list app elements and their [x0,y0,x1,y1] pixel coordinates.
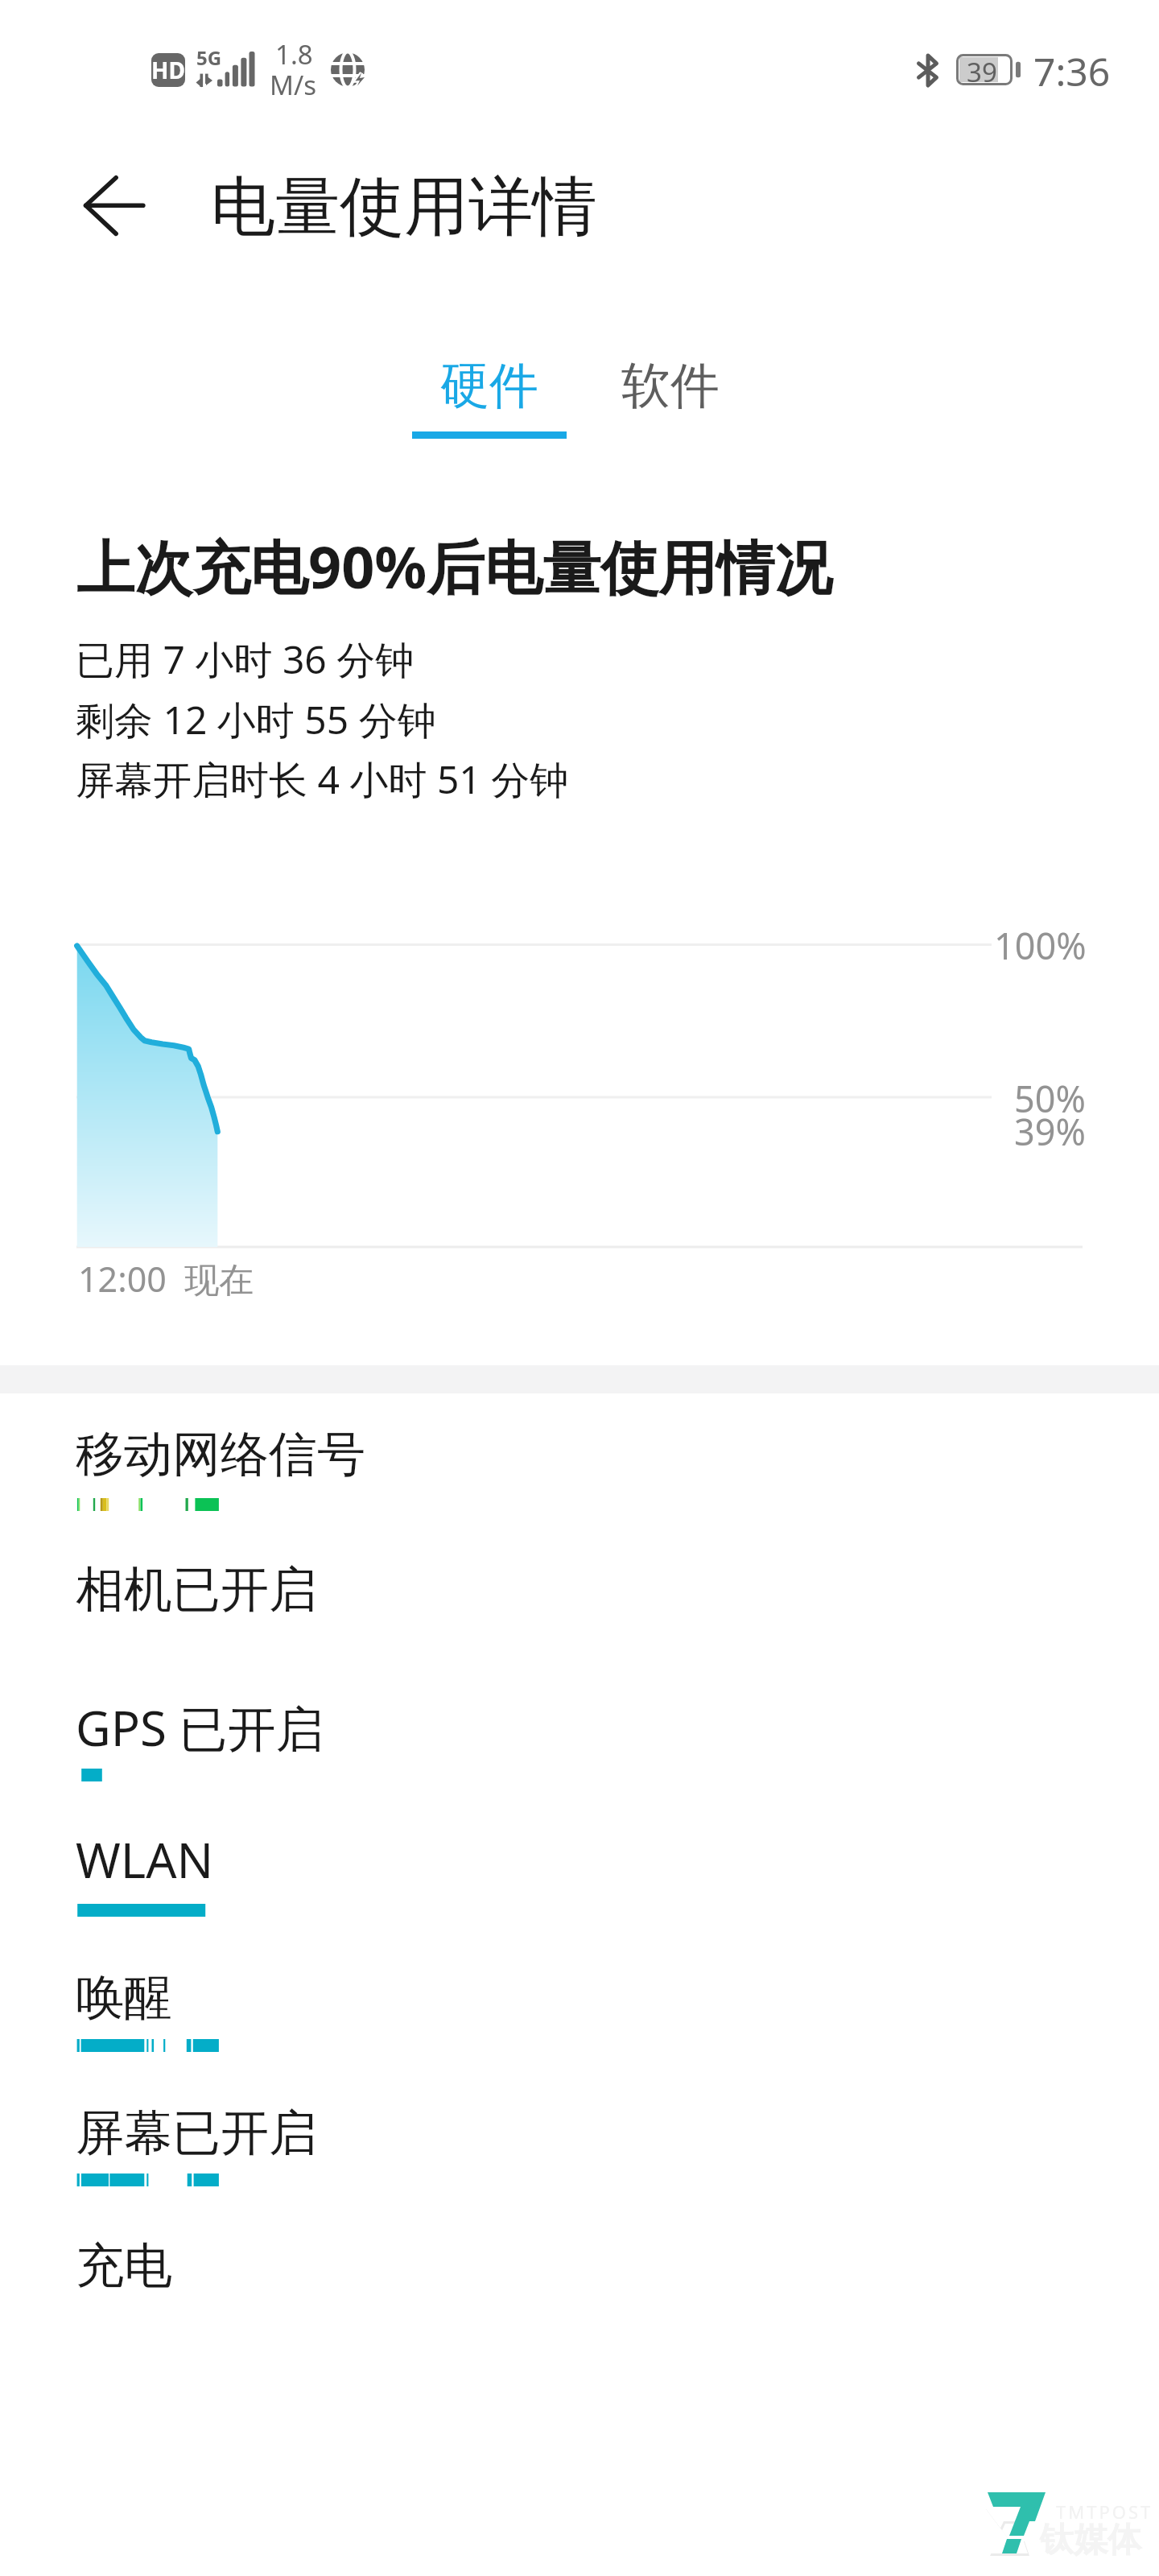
button[interactable]: 软件 [593,355,748,439]
staticText: 屏幕已开启 [76,2103,317,2164]
staticText: 相机已开启 [76,1559,317,1620]
button[interactable]: 硬件 [412,355,567,439]
staticText: M/s [270,67,317,103]
button[interactable]: 相机已开启 [0,1559,1159,1688]
staticText: TMTPOST [1056,2500,1153,2524]
staticText: 上次充电90%后电量使用情况 [76,526,833,605]
button[interactable]: WLAN [0,1827,1159,1955]
staticText: 39% [1014,1107,1086,1156]
staticText: 5G [196,44,222,71]
staticText: 剩余 12 小时 55 分钟 [76,693,436,746]
button[interactable]: 移动网络信号 [0,1424,1159,1553]
staticText: GPS 已开启 [76,1695,324,1761]
staticText: 电量使用详情 [211,167,597,248]
staticText: 屏幕开启时长 4 小时 51 分钟 [76,753,569,806]
button[interactable]: 屏幕已开启 [0,2103,1159,2231]
staticText: 充电 [76,2235,172,2297]
staticText: 1.8 [275,36,313,72]
staticText: 软件 [621,355,720,417]
staticText: 12:00 现在 [78,1255,254,1302]
staticText: 100% [994,921,1087,970]
staticText: 7:36 [1033,45,1111,97]
staticText: WLAN [76,1827,214,1893]
staticText: 已用 7 小时 36 分钟 [76,633,415,686]
staticText: 39 [967,54,997,85]
button[interactable]: GPS 已开启 [0,1695,1159,1823]
staticText: HD [151,55,185,85]
staticText: 移动网络信号 [76,1424,365,1485]
staticText: 50% [1014,1074,1086,1123]
staticText: 硬件 [440,355,538,417]
staticText: 钛媒体 [1040,2519,1141,2562]
button[interactable]: 唤醒 [0,1967,1159,2096]
button[interactable]: Back [56,148,172,264]
button[interactable]: 充电 [0,2235,1159,2332]
staticText: 唤醒 [76,1967,172,2029]
